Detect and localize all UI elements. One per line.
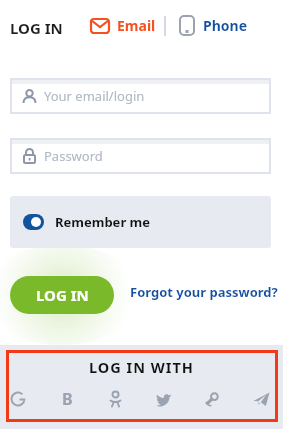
button[interactable]: B (55, 387, 79, 411)
staticText: Email (117, 16, 156, 35)
staticText: Phone (203, 16, 248, 35)
button[interactable] (152, 387, 176, 411)
button[interactable]: Phone (179, 15, 248, 36)
button[interactable] (6, 387, 30, 411)
staticText: LOG IN (36, 285, 89, 305)
button[interactable]: LOG IN (10, 276, 114, 314)
staticText: LOG IN (10, 18, 63, 38)
staticText: Password (44, 147, 103, 165)
staticText: Remember me (55, 213, 151, 231)
button[interactable] (249, 387, 273, 411)
staticText: LOG IN WITH (89, 357, 194, 377)
button[interactable] (103, 387, 127, 411)
button[interactable]: Remember me (23, 196, 271, 248)
staticText: B (62, 388, 73, 410)
button[interactable] (200, 387, 224, 411)
button[interactable]: Forgot your password? (130, 283, 278, 301)
button[interactable]: Email (90, 16, 156, 35)
button[interactable]: Your email/login (10, 78, 271, 114)
button[interactable]: Password (10, 138, 271, 174)
staticText: Your email/login (44, 87, 145, 105)
